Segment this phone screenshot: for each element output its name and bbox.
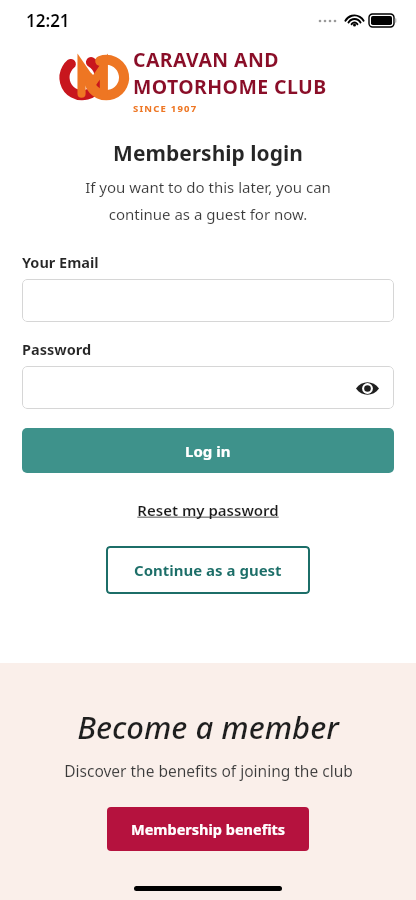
staticText: Membership login xyxy=(0,139,416,168)
staticText: SINCE 1907 xyxy=(133,102,198,115)
button[interactable]: Continue as a guest xyxy=(106,546,310,594)
staticText: Discover the benefits of joining the clu… xyxy=(64,760,353,781)
staticText: Log in xyxy=(185,441,231,461)
staticText: Become a member xyxy=(77,706,339,748)
staticText: Password xyxy=(22,339,416,359)
staticText: 12:21 xyxy=(26,9,70,32)
staticText: If you want to do this later, you can co… xyxy=(22,177,394,225)
button[interactable]: Reset my password xyxy=(0,497,416,523)
button[interactable]: Show password xyxy=(352,373,382,403)
staticText: Continue as a guest xyxy=(134,560,282,580)
button[interactable]: Show password xyxy=(22,366,394,409)
staticText: Membership benefits xyxy=(131,819,286,839)
staticText: Your Email xyxy=(22,252,416,272)
staticText: CARAVAN AND xyxy=(133,46,279,73)
button[interactable]: Membership benefits xyxy=(107,807,309,851)
button[interactable] xyxy=(22,279,394,322)
staticText: MOTORHOME CLUB xyxy=(133,73,327,100)
button[interactable]: Log in xyxy=(22,428,394,473)
